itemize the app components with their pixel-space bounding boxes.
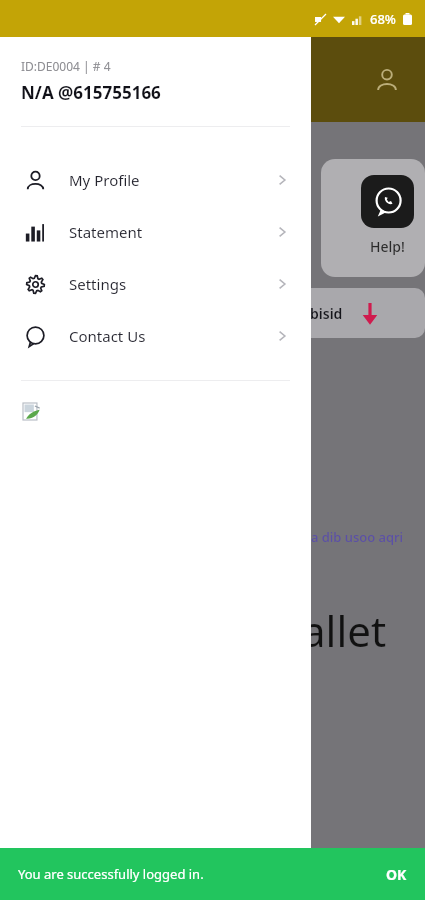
staticText: Help! (370, 237, 405, 256)
staticText: ID:DE0004 | # 4 (21, 58, 111, 74)
staticText: N/A @615755166 (21, 81, 161, 104)
button[interactable]: OK (368, 853, 425, 896)
staticText: OK (386, 865, 407, 884)
button[interactable]: Account (365, 58, 409, 102)
button[interactable]: Statement (0, 206, 311, 258)
staticText: You are successfully logged in. (18, 865, 204, 883)
button[interactable]: Settings (0, 258, 311, 310)
staticText: Settings (69, 274, 127, 294)
staticText: My Profile (69, 170, 140, 190)
staticText: ta dib usoo aqri (306, 528, 404, 546)
staticText: bisid (310, 304, 343, 323)
staticText: allet (302, 602, 387, 659)
button[interactable]: Contact Us (0, 310, 311, 362)
staticText: 68% (370, 10, 396, 28)
staticText: Statement (69, 222, 143, 242)
button[interactable]: My Profile (0, 154, 311, 206)
button[interactable]: Help! (321, 159, 425, 277)
staticText: Contact Us (69, 326, 146, 346)
button[interactable]: bisid (300, 288, 425, 338)
